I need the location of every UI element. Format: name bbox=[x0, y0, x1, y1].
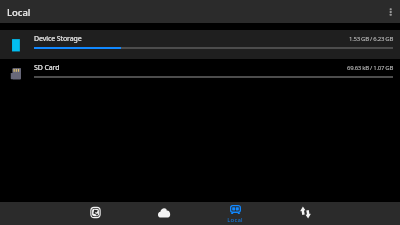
button[interactable]: Transfers bbox=[270, 202, 340, 225]
staticText: SD Card bbox=[34, 63, 60, 73]
staticText: 69.63 kB / 1.07 GB bbox=[347, 64, 394, 72]
button[interactable]: Cloud bbox=[130, 202, 200, 225]
button[interactable]: Local bbox=[200, 202, 270, 225]
button[interactable]: Network bbox=[60, 202, 130, 225]
staticText: 1.53 GB / 6.23 GB bbox=[349, 35, 394, 43]
button[interactable]: SD Card bbox=[0, 59, 400, 88]
staticText: Local bbox=[227, 216, 243, 224]
button[interactable]: More options bbox=[380, 0, 400, 23]
staticText: Device Storage bbox=[34, 34, 82, 44]
button[interactable]: Device Storage bbox=[0, 30, 400, 59]
staticText: Local bbox=[7, 6, 31, 19]
